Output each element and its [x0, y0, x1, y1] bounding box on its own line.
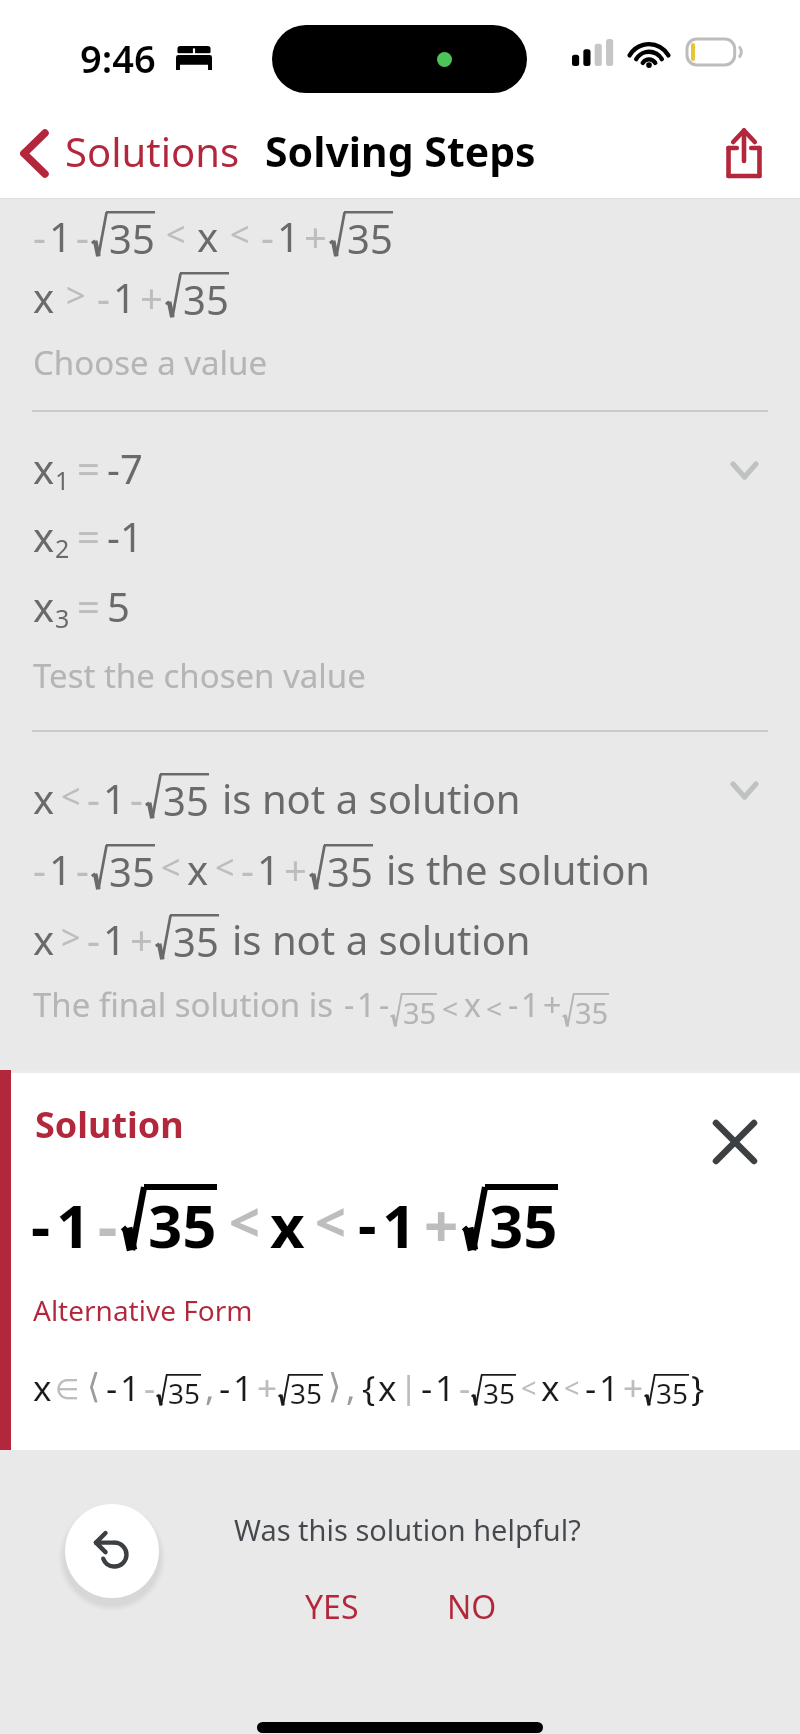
staticText: is the solution — [386, 842, 651, 890]
staticText: 35 — [403, 993, 437, 1027]
staticText: x — [33, 509, 55, 557]
staticText: 1 — [382, 1184, 417, 1252]
staticText: 2 — [55, 531, 70, 565]
staticText: < — [61, 773, 81, 819]
staticText: - — [358, 1184, 377, 1252]
staticText: + — [623, 1364, 644, 1406]
staticText: - — [106, 1364, 118, 1406]
staticText: 1 — [257, 842, 280, 890]
staticText: 1 — [277, 209, 300, 257]
staticText: 3 — [55, 601, 70, 635]
staticText: < — [442, 989, 459, 1027]
staticText: + — [304, 209, 327, 257]
staticText: < — [521, 1369, 537, 1406]
staticText: 1 — [55, 463, 70, 497]
staticText: - — [33, 842, 46, 890]
staticText: 35 — [483, 1374, 516, 1406]
staticText: x — [464, 983, 481, 1027]
staticText: 35 — [173, 914, 219, 960]
staticText: 35 — [109, 211, 155, 257]
staticText: - — [97, 270, 110, 318]
staticText: 1 — [49, 842, 72, 890]
staticText: 35 — [347, 211, 393, 257]
button[interactable]: Close — [708, 1115, 762, 1169]
button[interactable]: Undo last step — [65, 1504, 159, 1598]
staticText: 1 — [56, 1184, 91, 1252]
staticText: YES — [305, 1585, 359, 1629]
staticText: - — [508, 983, 519, 1027]
staticText: - — [459, 1364, 471, 1406]
staticText: , — [205, 1364, 215, 1406]
staticText: 35 — [168, 1374, 201, 1406]
staticText: x — [33, 579, 55, 627]
button[interactable]: Expand step — [718, 770, 770, 810]
button[interactable]: NO — [419, 1577, 525, 1637]
staticText: | — [399, 1364, 419, 1406]
staticText: 9:46 — [80, 32, 156, 84]
staticText: 1 — [357, 983, 376, 1027]
staticText: - — [585, 1364, 597, 1406]
staticText: x — [270, 1184, 305, 1252]
staticText: 35 — [656, 1374, 689, 1406]
staticText: < — [161, 844, 181, 890]
staticText: is not a solution — [222, 771, 521, 819]
staticText: < — [215, 844, 235, 890]
staticText: { — [362, 1364, 376, 1406]
staticText: + — [140, 270, 163, 318]
staticText: - — [33, 209, 46, 257]
staticText: 1 — [233, 1364, 254, 1406]
staticText: Alternative Form — [33, 1291, 253, 1329]
staticText: - — [87, 771, 100, 819]
staticText: - — [76, 842, 89, 890]
staticText: - — [87, 912, 100, 960]
staticText: The final solution is — [33, 982, 334, 1027]
staticText: x — [541, 1364, 560, 1406]
staticText: -7 — [107, 441, 143, 489]
staticText: Solution — [35, 1100, 184, 1149]
staticText: } — [691, 1364, 705, 1406]
staticText: 35 — [148, 1184, 217, 1252]
staticText: < — [166, 211, 186, 257]
staticText: 35 — [163, 773, 209, 819]
staticText: Test the chosen value — [33, 653, 366, 698]
staticText: x — [197, 209, 219, 257]
staticText: x — [187, 842, 209, 890]
staticText: Choose a value — [33, 340, 268, 385]
button[interactable]: Solutions — [0, 116, 252, 190]
staticText: 5 — [107, 579, 130, 627]
staticText: , — [346, 1364, 356, 1406]
staticText: + — [257, 1364, 278, 1406]
button[interactable]: Share — [700, 114, 800, 192]
staticText: > — [61, 914, 81, 960]
staticText: < — [486, 989, 503, 1027]
staticText: = — [77, 579, 100, 627]
button[interactable]: YES — [277, 1577, 387, 1637]
staticText: - — [144, 1364, 156, 1406]
staticText: is not a solution — [232, 912, 531, 960]
staticText: Was this solution helpful? — [234, 1510, 581, 1549]
staticText: x — [33, 270, 55, 318]
staticText: < — [230, 211, 250, 257]
staticText: + — [130, 912, 153, 960]
staticText: 1 — [599, 1364, 620, 1406]
staticText: - — [421, 1364, 433, 1406]
staticText: 1 — [120, 1364, 141, 1406]
staticText: NO — [447, 1585, 497, 1629]
staticText: 35 — [109, 844, 155, 890]
button[interactable]: Expand step — [718, 450, 770, 490]
staticText: x — [33, 441, 55, 489]
staticText: 1 — [521, 983, 540, 1027]
staticText: - — [344, 983, 355, 1027]
staticText: + — [284, 842, 307, 890]
staticText: x — [33, 1364, 52, 1406]
staticText: x — [378, 1364, 397, 1406]
staticText: 35 — [489, 1184, 558, 1252]
staticText: = — [77, 509, 100, 557]
staticText: < — [564, 1369, 580, 1406]
staticText: - — [219, 1364, 231, 1406]
staticText: - — [76, 209, 89, 257]
staticText: + — [543, 983, 562, 1027]
staticText: 1 — [435, 1364, 456, 1406]
staticText: - — [130, 771, 143, 819]
staticText: < — [229, 1184, 260, 1252]
